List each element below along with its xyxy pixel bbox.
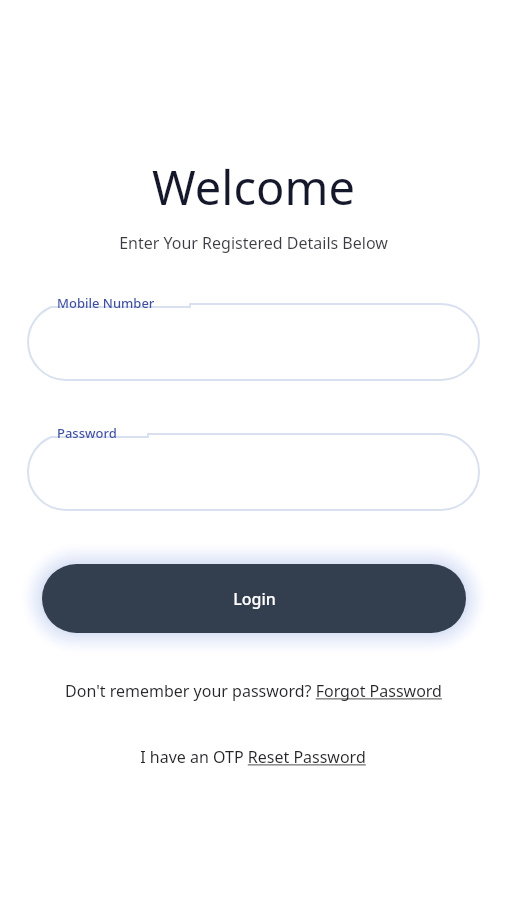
staticText: Password bbox=[57, 424, 117, 442]
button[interactable]: Don't remember your password? Forgot Pas… bbox=[20, 676, 486, 706]
button[interactable]: Mobile Number bbox=[27, 303, 480, 381]
button[interactable]: Password bbox=[27, 433, 480, 511]
staticText: Don't remember your password? Forgot Pas… bbox=[65, 680, 442, 702]
staticText: Login bbox=[233, 588, 276, 610]
staticText: Enter Your Registered Details Below bbox=[119, 232, 388, 254]
staticText: Mobile Number bbox=[57, 294, 155, 312]
button[interactable]: Login bbox=[42, 564, 466, 633]
button[interactable]: I have an OTP Reset Password bbox=[20, 742, 486, 772]
staticText: I have an OTP Reset Password bbox=[140, 746, 366, 768]
staticText: Welcome bbox=[152, 155, 355, 219]
